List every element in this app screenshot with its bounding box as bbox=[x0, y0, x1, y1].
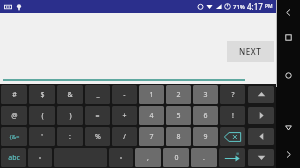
staticText: ? bbox=[231, 90, 235, 100]
staticText: % bbox=[95, 132, 101, 142]
staticText: 0 bbox=[174, 153, 179, 163]
button[interactable]: Symbol bbox=[109, 148, 133, 167]
staticText: 8 bbox=[176, 132, 181, 142]
staticText: # bbox=[12, 90, 17, 100]
button[interactable]: ) bbox=[57, 106, 83, 125]
button[interactable]: ? bbox=[220, 85, 245, 104]
staticText: @ bbox=[11, 111, 18, 121]
staticText: NEXT bbox=[239, 46, 262, 57]
staticText: {&= bbox=[9, 133, 20, 141]
button[interactable]: 5 bbox=[166, 106, 191, 125]
button[interactable]: Arrow left bbox=[248, 128, 274, 145]
staticText: 1 bbox=[149, 90, 154, 100]
button[interactable]: , bbox=[135, 148, 161, 167]
button[interactable]: Back bbox=[277, 4, 299, 20]
button[interactable]: Arrow up bbox=[248, 86, 274, 103]
button[interactable]: _ bbox=[85, 85, 110, 104]
button[interactable]: 9 bbox=[193, 127, 218, 146]
staticText: - bbox=[123, 90, 126, 100]
staticText: PM bbox=[265, 3, 273, 10]
button[interactable]: ! bbox=[220, 106, 245, 125]
button[interactable]: 4 bbox=[139, 106, 164, 125]
button[interactable]: @ bbox=[1, 106, 27, 125]
button[interactable]: Recent apps bbox=[277, 28, 299, 46]
staticText: 4:17 bbox=[247, 1, 263, 12]
button[interactable]: NEXT bbox=[227, 41, 274, 62]
staticText: / bbox=[123, 132, 126, 142]
staticText: 4 bbox=[149, 111, 154, 121]
button[interactable]: abc bbox=[1, 148, 26, 167]
staticText: 5 bbox=[176, 111, 181, 121]
button[interactable]: 3 bbox=[193, 85, 218, 104]
button[interactable]: ' bbox=[29, 127, 55, 146]
staticText: . bbox=[203, 153, 205, 163]
staticText: , bbox=[147, 153, 149, 163]
button[interactable]: : bbox=[57, 127, 83, 146]
button[interactable]: $ bbox=[29, 85, 55, 104]
button[interactable]: 6 bbox=[193, 106, 218, 125]
staticText: 71% bbox=[233, 3, 245, 11]
button[interactable]: . bbox=[191, 148, 217, 167]
button[interactable]: Arrow down bbox=[248, 149, 274, 166]
button[interactable]: 7 bbox=[139, 127, 164, 146]
button[interactable]: & bbox=[57, 85, 83, 104]
button[interactable]: + bbox=[112, 106, 137, 125]
button[interactable]: Arrow right bbox=[248, 107, 274, 124]
staticText: 3 bbox=[203, 90, 208, 100]
button[interactable]: {&= bbox=[1, 127, 27, 146]
button[interactable]: Forward bbox=[277, 146, 299, 162]
staticText: 2 bbox=[176, 90, 181, 100]
button[interactable]: 0 bbox=[163, 148, 189, 167]
staticText: abc bbox=[8, 153, 20, 163]
staticText: _ bbox=[96, 90, 100, 100]
staticText: ' bbox=[41, 132, 43, 142]
staticText: & bbox=[67, 90, 73, 100]
staticText: = bbox=[95, 111, 100, 121]
staticText: ! bbox=[232, 111, 234, 121]
staticText: $ bbox=[40, 90, 45, 100]
button[interactable]: Shift bbox=[28, 148, 52, 167]
staticText: 9 bbox=[203, 132, 208, 142]
staticText: 7 bbox=[149, 132, 154, 142]
button[interactable]: - bbox=[112, 85, 137, 104]
staticText: + bbox=[122, 111, 127, 121]
button[interactable]: = bbox=[85, 106, 110, 125]
button[interactable]: ( bbox=[29, 106, 55, 125]
staticText: ) bbox=[69, 111, 72, 121]
staticText: ( bbox=[41, 111, 44, 121]
button[interactable]: Hide keyboard bbox=[277, 118, 299, 136]
staticText: : bbox=[69, 132, 71, 142]
button[interactable]: / bbox=[112, 127, 137, 146]
button[interactable]: # bbox=[1, 85, 27, 104]
button[interactable]: Backspace bbox=[220, 127, 245, 146]
button[interactable]: Home bbox=[277, 66, 299, 84]
button[interactable]: Enter bbox=[219, 148, 245, 167]
button[interactable]: 1 bbox=[139, 85, 164, 104]
button[interactable]: 8 bbox=[166, 127, 191, 146]
button[interactable]: % bbox=[85, 127, 110, 146]
button[interactable]: 2 bbox=[166, 85, 191, 104]
staticText: 6 bbox=[203, 111, 208, 121]
